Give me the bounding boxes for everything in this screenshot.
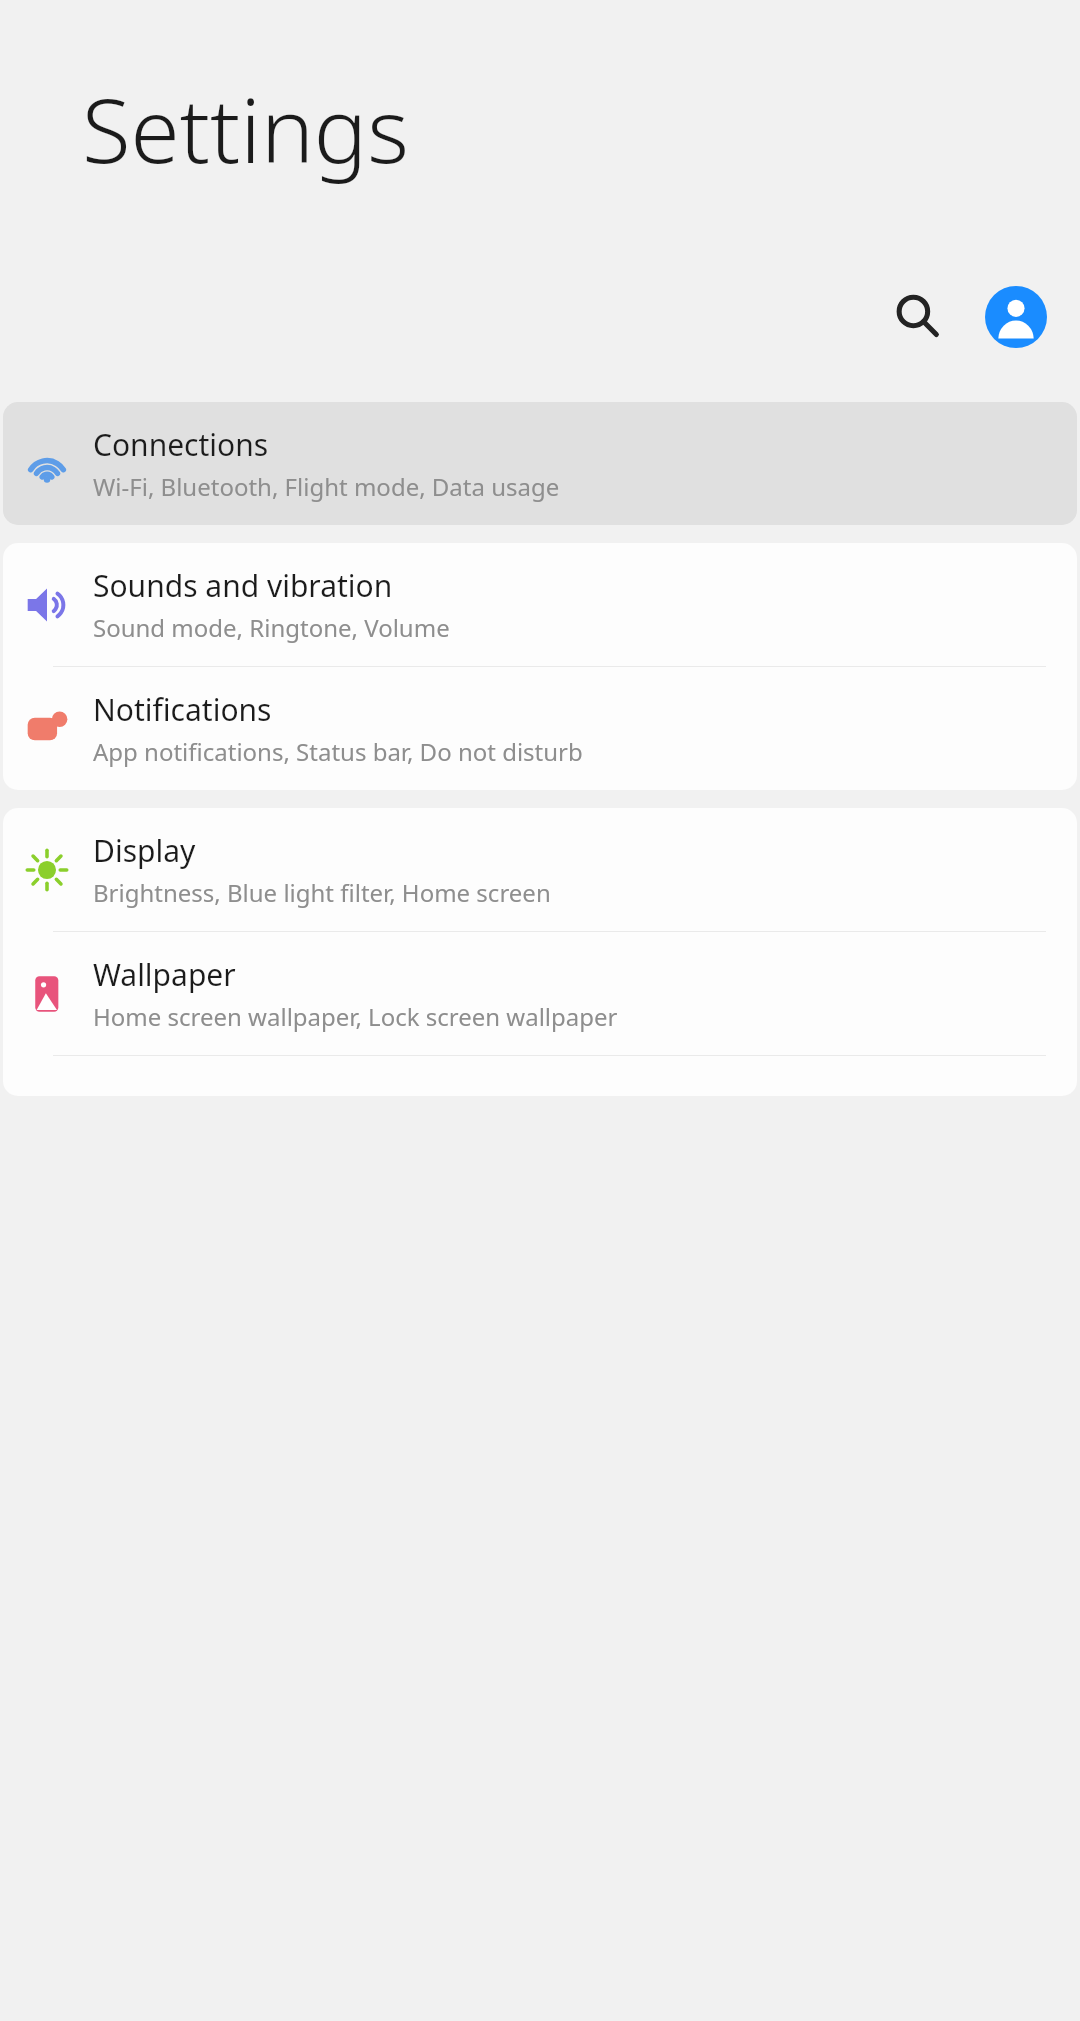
staticText: Wi-Fi, Bluetooth, Flight mode, Data usag… [93, 470, 560, 503]
staticText: Sounds and vibration [93, 565, 393, 606]
button[interactable]: Notifications [3, 667, 1077, 790]
staticText: Notifications [93, 689, 272, 730]
staticText: App notifications, Status bar, Do not di… [93, 735, 583, 768]
button[interactable]: Wallpaper [3, 932, 1077, 1055]
staticText: Connections [93, 424, 269, 465]
button[interactable]: Account [974, 275, 1058, 359]
staticText: Wallpaper [93, 954, 236, 995]
staticText: Display [93, 830, 196, 871]
staticText: Home screen wallpaper, Lock screen wallp… [93, 1000, 618, 1033]
button[interactable]: Search [876, 275, 960, 359]
staticText: Sound mode, Ringtone, Volume [93, 611, 450, 644]
button[interactable]: Display [3, 808, 1077, 931]
button[interactable]: Connections [3, 402, 1077, 525]
button[interactable]: Sounds and vibration [3, 543, 1077, 666]
staticText: Settings [82, 68, 409, 189]
staticText: Brightness, Blue light filter, Home scre… [93, 876, 551, 909]
